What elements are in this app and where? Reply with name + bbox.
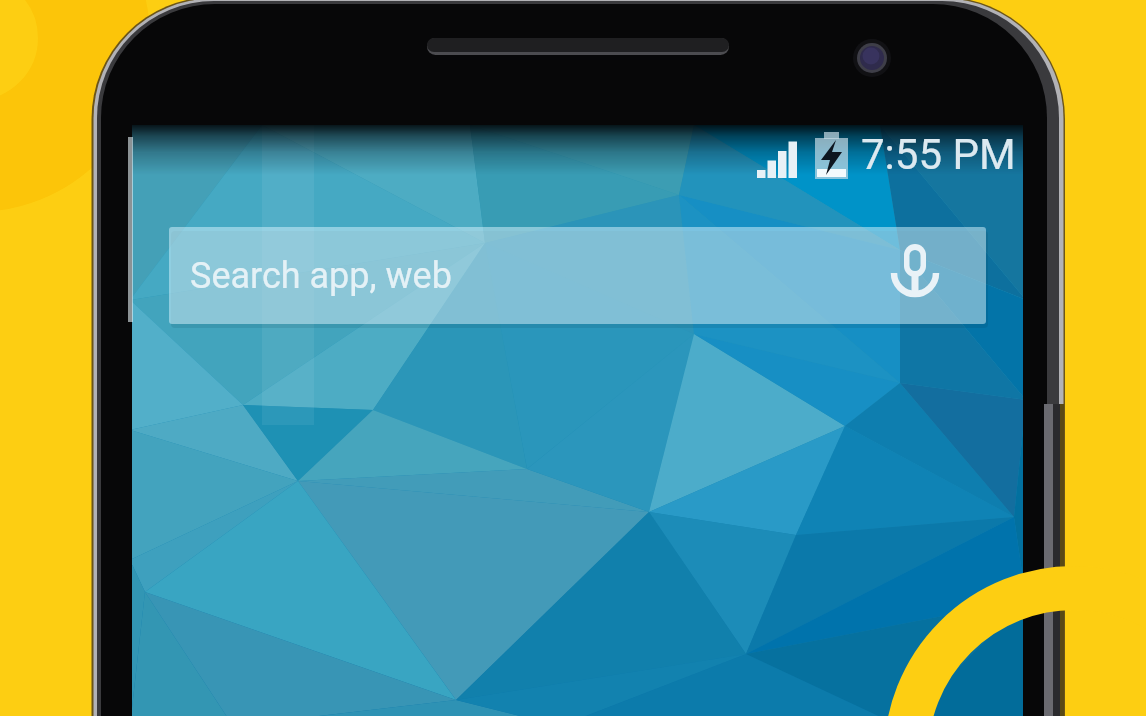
staticText: 7:55 PM [861, 130, 1016, 179]
button[interactable]: Search app, web [169, 227, 986, 324]
staticText: Search app, web [190, 255, 452, 297]
